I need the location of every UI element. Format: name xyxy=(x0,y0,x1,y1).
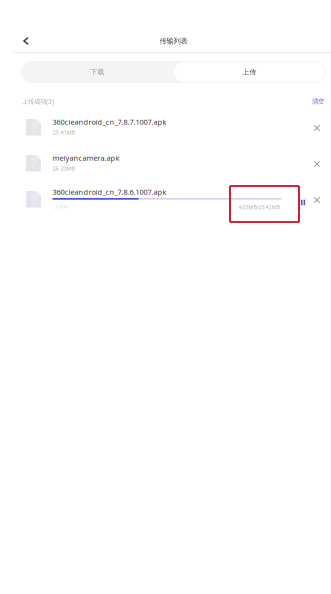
button[interactable]: Back xyxy=(15,32,37,50)
staticText: 清空 xyxy=(312,97,324,105)
button[interactable]: 下载 xyxy=(21,61,174,83)
staticText: 4.03MB/25.42MB xyxy=(238,204,279,211)
staticText: 下载 xyxy=(90,68,104,76)
staticText: 360cleandroid_cn_7.8.6.1007.apk xyxy=(52,187,166,197)
staticText: 上传中 xyxy=(53,204,68,211)
staticText: 传输列表 xyxy=(159,36,187,46)
button[interactable]: Remove xyxy=(308,155,326,173)
staticText: 25.41MB xyxy=(52,128,75,136)
button[interactable]: Remove xyxy=(308,119,326,137)
button[interactable]: 清空 xyxy=(312,97,324,105)
staticText: 上传成功(3) xyxy=(22,97,54,106)
staticText: 360cleandroid_cn_7.8.7.1007.apk xyxy=(52,117,166,127)
staticText: meiyancamera.apk xyxy=(52,153,119,163)
staticText: 26.23MB xyxy=(52,164,75,172)
staticText: 上传 xyxy=(242,68,256,76)
staticText: ? xyxy=(31,155,36,171)
staticText: ? xyxy=(31,191,36,207)
button[interactable]: 上传 xyxy=(174,62,325,82)
button[interactable]: Pause xyxy=(298,193,308,211)
button[interactable]: Remove xyxy=(308,191,326,209)
staticText: ? xyxy=(31,119,36,135)
